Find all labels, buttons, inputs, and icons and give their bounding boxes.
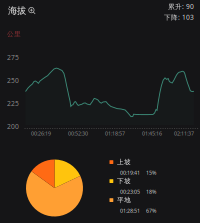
staticText: 15%: [146, 169, 156, 176]
staticText: 02:11:37: [174, 130, 194, 137]
staticText: 00:52:30: [68, 130, 88, 137]
staticText: 275: [7, 53, 19, 62]
staticText: 00:19:41: [120, 169, 140, 176]
button[interactable]: 海拔: [7, 5, 37, 16]
staticText: 公里: [7, 30, 21, 38]
staticText: 01:28:51: [120, 207, 140, 214]
staticText: 01:18:57: [105, 130, 125, 137]
staticText: 海拔: [8, 5, 26, 16]
staticText: 01:45:16: [142, 130, 162, 137]
staticText: 67%: [146, 207, 156, 214]
staticText: 00:26:19: [31, 130, 51, 137]
staticText: 18%: [146, 188, 156, 195]
staticText: 下降: 103: [164, 13, 194, 22]
staticText: 累升: 90: [168, 2, 194, 11]
staticText: 平地: [117, 196, 131, 204]
staticText: 250: [7, 76, 19, 85]
staticText: 225: [7, 99, 19, 108]
staticText: 上坡: [117, 158, 131, 166]
staticText: 200: [7, 122, 19, 131]
staticText: 00:23:05: [120, 188, 140, 195]
staticText: 下坡: [117, 177, 131, 185]
